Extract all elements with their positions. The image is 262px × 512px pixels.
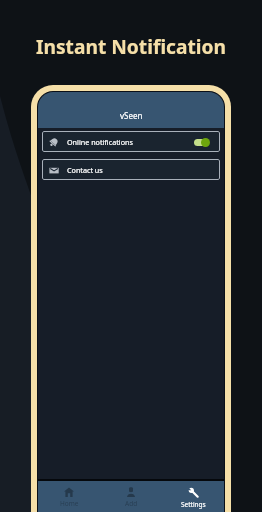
button[interactable]: Home — [38, 481, 100, 508]
staticText: Contact us — [67, 165, 103, 175]
staticText: Home — [60, 499, 79, 508]
staticText: Instant Notification — [0, 33, 262, 59]
button[interactable]: Toggle online notifications — [194, 137, 210, 147]
staticText: Online notifications — [67, 137, 133, 147]
button[interactable]: Online notifications — [42, 131, 220, 152]
staticText: vSeen — [120, 110, 143, 121]
staticText: Settings — [181, 500, 206, 509]
button[interactable]: Contact us — [42, 159, 220, 180]
button[interactable]: Add — [100, 481, 162, 508]
staticText: Add — [125, 499, 138, 508]
button[interactable]: Settings — [162, 481, 224, 509]
